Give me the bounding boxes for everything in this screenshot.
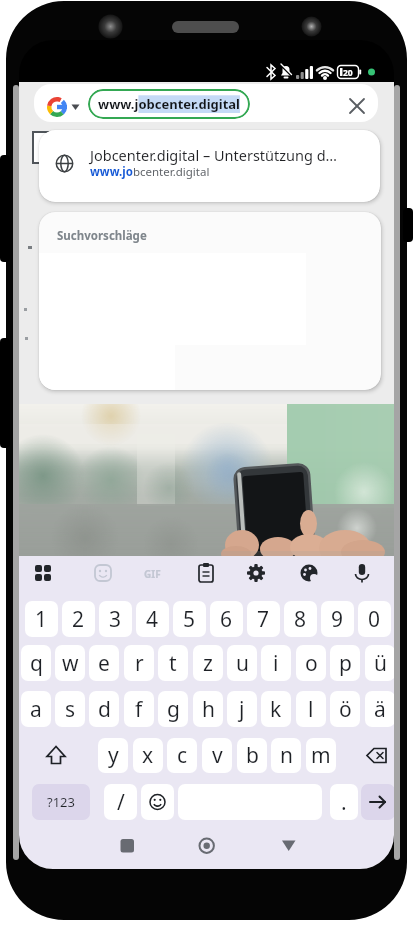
button[interactable]: 9: [321, 601, 354, 637]
staticText: GIF: [144, 567, 161, 581]
staticText: t: [169, 649, 177, 678]
button[interactable]: q: [21, 645, 51, 681]
button[interactable]: z: [193, 645, 223, 681]
button[interactable]: [361, 784, 394, 820]
button[interactable]: l: [296, 691, 326, 727]
button[interactable]: 4: [136, 601, 169, 637]
staticText: 7: [257, 605, 270, 634]
button[interactable]: 7: [247, 601, 280, 637]
button[interactable]: [39, 130, 380, 202]
button[interactable]: k: [261, 691, 291, 727]
button[interactable]: m: [306, 738, 336, 773]
button[interactable]: 6: [210, 601, 243, 637]
button[interactable]: [182, 830, 232, 869]
staticText: 0: [368, 605, 381, 634]
button[interactable]: ö: [330, 691, 360, 727]
button[interactable]: www.jobcenter.digital: [88, 89, 250, 119]
button[interactable]: i: [261, 645, 291, 681]
staticText: 3: [109, 605, 122, 634]
staticText: ö: [339, 695, 352, 724]
button[interactable]: e: [89, 645, 119, 681]
button[interactable]: n: [271, 738, 301, 773]
staticText: 2: [72, 605, 85, 634]
button[interactable]: x: [133, 738, 163, 773]
button[interactable]: 2: [62, 601, 95, 637]
staticText: y: [108, 741, 119, 770]
button[interactable]: o: [296, 645, 326, 681]
staticText: u: [236, 649, 249, 678]
staticText: i: [273, 649, 279, 678]
button[interactable]: u: [227, 645, 257, 681]
staticText: d: [98, 695, 111, 724]
button[interactable]: 8: [284, 601, 317, 637]
staticText: x: [142, 741, 154, 770]
button[interactable]: [141, 784, 174, 820]
staticText: w: [62, 649, 79, 678]
staticText: l: [308, 695, 314, 724]
staticText: f: [135, 695, 143, 724]
button[interactable]: [114, 830, 164, 869]
button[interactable]: a: [21, 691, 51, 727]
button[interactable]: h: [193, 691, 223, 727]
button[interactable]: y: [98, 738, 128, 773]
button[interactable]: [351, 738, 394, 773]
button[interactable]: 5: [173, 601, 206, 637]
staticText: z: [203, 649, 213, 678]
staticText: 4: [146, 605, 159, 634]
button[interactable]: t: [158, 645, 188, 681]
staticText: ü: [374, 649, 387, 678]
staticText: www.jobcenter.digital: [90, 164, 210, 180]
staticText: m: [311, 741, 331, 770]
staticText: h: [202, 695, 215, 724]
staticText: q: [30, 649, 43, 678]
staticText: g: [167, 695, 180, 724]
button[interactable]: [264, 830, 314, 869]
button[interactable]: ä: [365, 691, 394, 727]
button[interactable]: g: [158, 691, 188, 727]
staticText: ?123: [47, 793, 75, 811]
staticText: r: [135, 649, 144, 678]
button[interactable]: c: [167, 738, 197, 773]
staticText: ä: [374, 695, 386, 724]
staticText: 20: [343, 67, 353, 79]
button[interactable]: 0: [358, 601, 391, 637]
staticText: n: [280, 741, 293, 770]
staticText: 5: [183, 605, 196, 634]
staticText: Jobcenter.digital – Unterstützung d…: [90, 145, 338, 165]
staticText: 8: [294, 605, 307, 634]
button[interactable]: ü: [365, 645, 394, 681]
staticText: v: [212, 741, 223, 770]
staticText: 6: [220, 605, 233, 634]
button[interactable]: /: [104, 784, 137, 820]
staticText: b: [246, 741, 259, 770]
button[interactable]: 1: [25, 601, 58, 637]
button[interactable]: r: [124, 645, 154, 681]
staticText: p: [339, 649, 352, 678]
button[interactable]: j: [227, 691, 257, 727]
button[interactable]: ?123: [32, 784, 90, 820]
staticText: e: [98, 649, 110, 678]
button[interactable]: s: [55, 691, 85, 727]
button[interactable]: .: [330, 784, 358, 820]
staticText: c: [177, 741, 188, 770]
staticText: k: [270, 695, 282, 724]
button[interactable]: w: [55, 645, 85, 681]
button[interactable]: d: [89, 691, 119, 727]
staticText: 1: [35, 605, 48, 634]
staticText: Suchvorschläge: [57, 228, 147, 244]
staticText: j: [239, 695, 245, 724]
button[interactable]: p: [330, 645, 360, 681]
staticText: a: [30, 695, 42, 724]
staticText: s: [65, 695, 76, 724]
button[interactable]: f: [124, 691, 154, 727]
staticText: o: [305, 649, 318, 678]
staticText: .: [341, 788, 347, 817]
button[interactable]: v: [202, 738, 232, 773]
staticText: /: [117, 788, 125, 817]
staticText: www.jobcenter.digital: [98, 95, 240, 113]
staticText: 9: [331, 605, 344, 634]
button[interactable]: [27, 738, 85, 773]
button[interactable]: b: [237, 738, 267, 773]
button[interactable]: 3: [99, 601, 132, 637]
